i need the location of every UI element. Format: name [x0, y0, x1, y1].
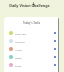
button[interactable]: Color Test — [4, 29, 59, 37]
button[interactable]: Depth — [4, 53, 59, 61]
button[interactable]: More options — [30, 1, 37, 8]
button[interactable]: Contrast — [4, 37, 59, 45]
staticText: Depth — [15, 56, 54, 59]
staticText: Daily Vision Challenge — [2, 3, 57, 8]
staticText: Color Test — [15, 32, 54, 35]
staticText: Contrast — [15, 40, 54, 43]
button[interactable]: Acuity — [4, 45, 59, 53]
staticText: Today's Tasks — [4, 21, 59, 25]
staticText: Focus — [15, 64, 54, 67]
staticText: Acuity — [15, 48, 54, 51]
button[interactable]: Focus — [4, 61, 59, 69]
